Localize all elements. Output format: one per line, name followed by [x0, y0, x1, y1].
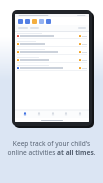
button[interactable]: Home — [20, 110, 29, 118]
button[interactable]: Settings — [75, 110, 84, 118]
button[interactable] — [15, 40, 89, 48]
button[interactable] — [15, 56, 89, 64]
button[interactable]: Alerts — [61, 110, 70, 118]
button[interactable]: App shortcut — [25, 19, 30, 24]
button[interactable]: Reports — [34, 110, 43, 118]
button[interactable]: App shortcut — [39, 19, 44, 24]
staticText: Keep track of your child's online activi… — [7, 139, 96, 157]
button[interactable] — [15, 64, 89, 72]
button[interactable]: Filter — [78, 27, 86, 29]
button[interactable]: App shortcut — [46, 19, 51, 24]
button[interactable]: App shortcut — [18, 19, 23, 24]
button[interactable]: App shortcut — [32, 19, 37, 24]
button[interactable] — [15, 32, 89, 40]
button[interactable]: Activity — [48, 110, 57, 118]
button[interactable] — [15, 48, 89, 56]
